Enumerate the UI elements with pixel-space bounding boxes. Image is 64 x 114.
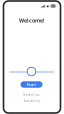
- staticText: Accessibility: [23, 99, 39, 103]
- button[interactable]: Accessibility: [23, 99, 39, 103]
- staticText: Start: [26, 82, 36, 87]
- staticText: Welcome!: [19, 17, 44, 24]
- staticText: Terms of use: [23, 93, 40, 97]
- button[interactable]: Start: [20, 81, 42, 88]
- button[interactable]: Terms of use: [23, 93, 40, 97]
